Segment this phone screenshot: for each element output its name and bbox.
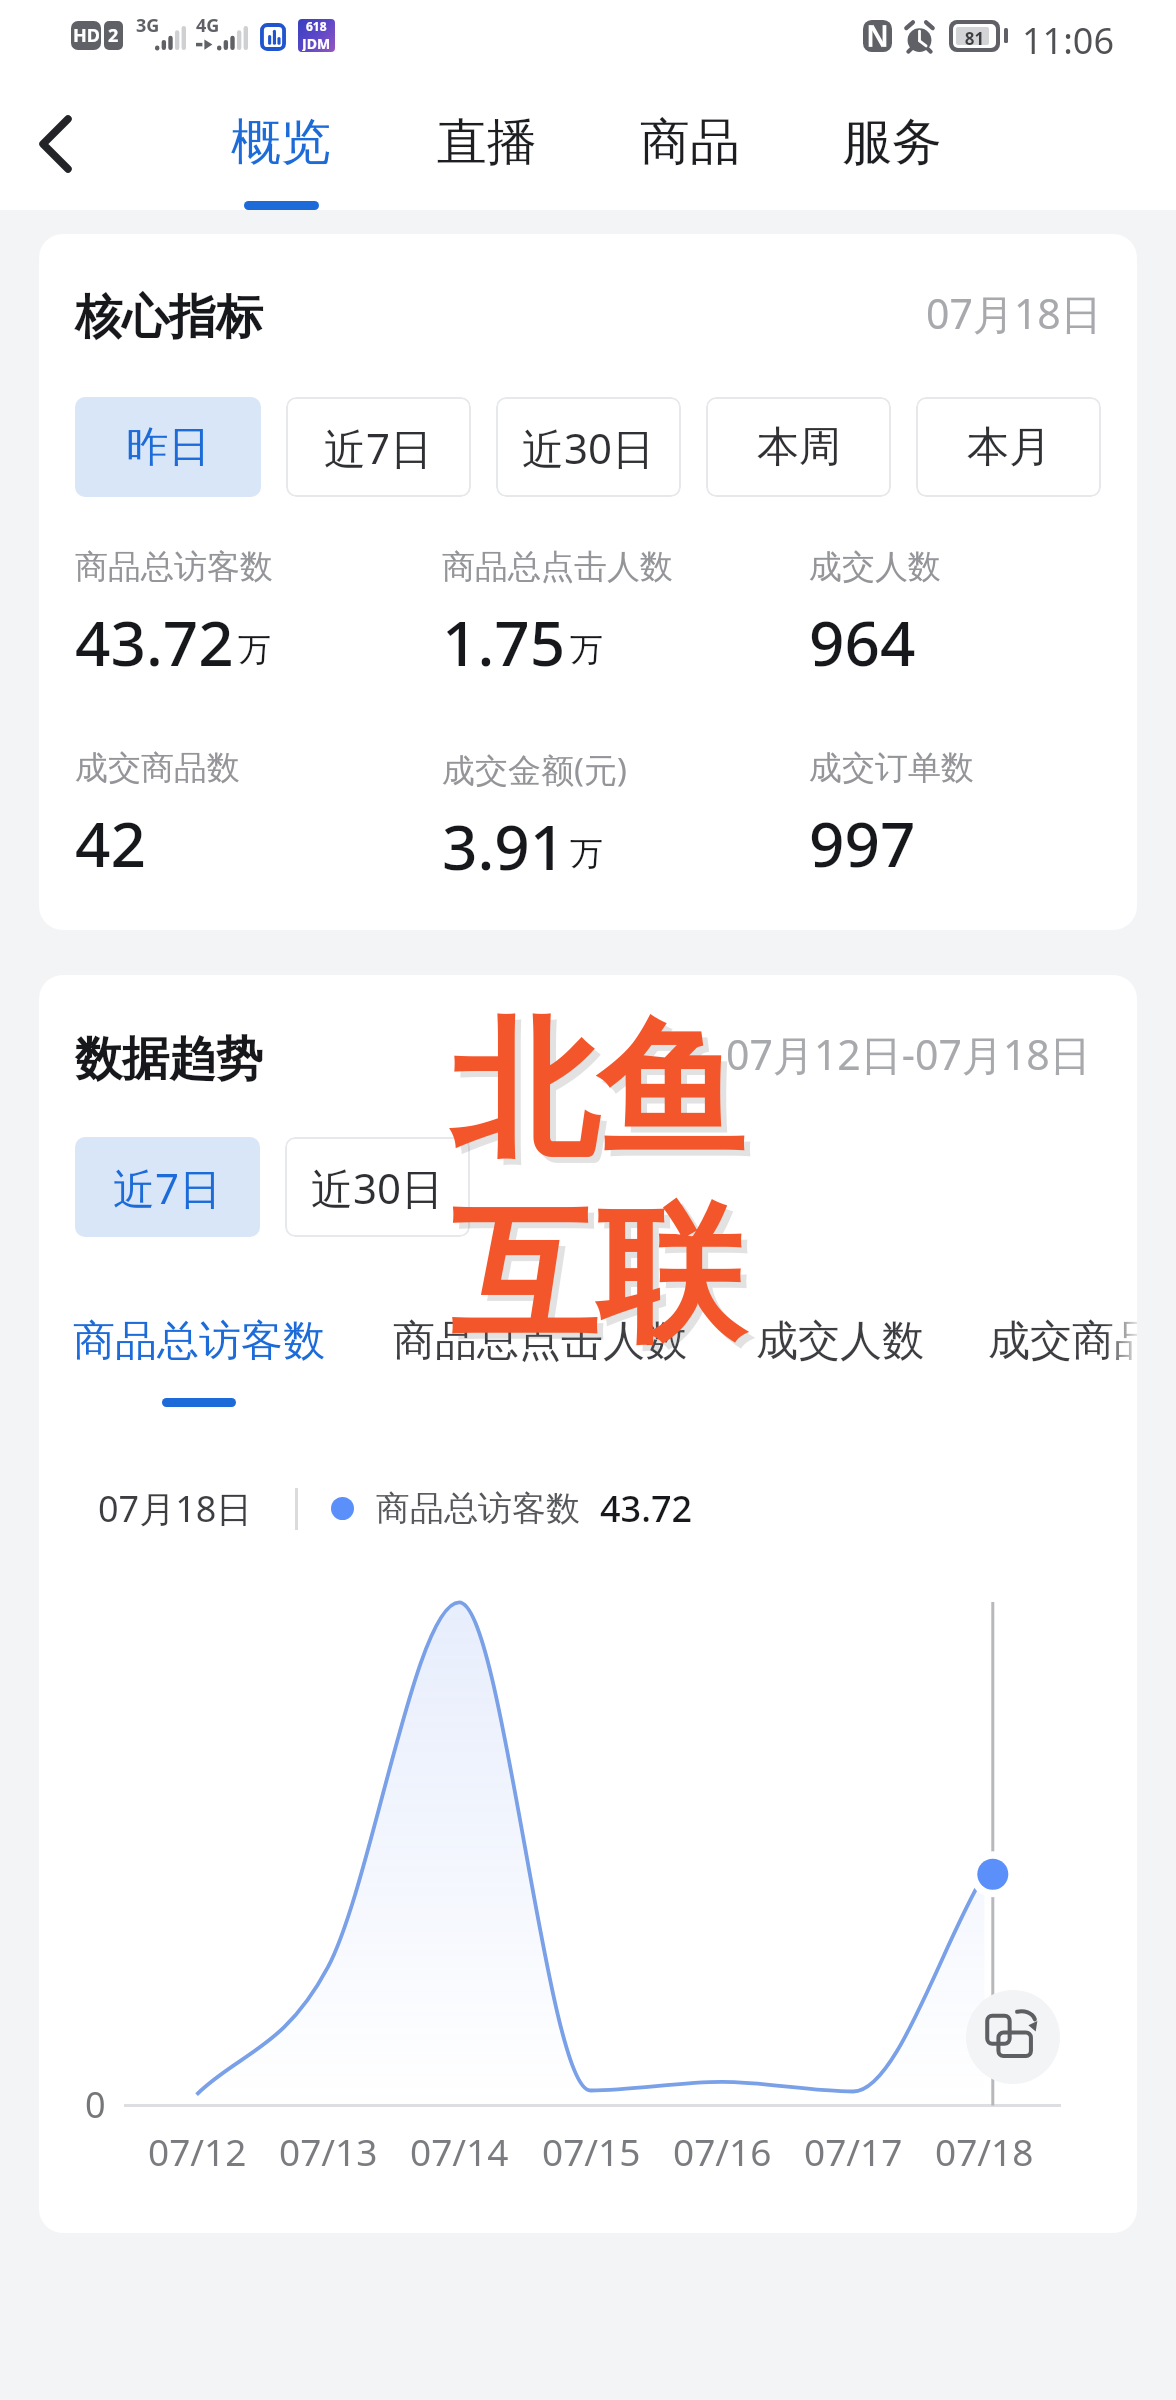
staticText: 成交人数 [756, 1315, 924, 1368]
staticText: 昨日 [126, 421, 210, 474]
button[interactable]: 商品总访客数 [39, 1315, 379, 1415]
staticText: 近7日 [324, 419, 433, 476]
staticText: 数据趋势 [75, 1030, 263, 1089]
staticText: 07/12 [148, 2126, 247, 2176]
staticText: 07/18 [935, 2126, 1034, 2176]
staticText: 07/15 [542, 2126, 641, 2176]
staticText: 07月18日 [926, 285, 1102, 341]
staticText: 997 [809, 801, 916, 885]
staticText: 3G [136, 13, 160, 38]
staticText: 07/17 [804, 2126, 903, 2176]
staticText: 服务 [842, 111, 942, 174]
staticText: 成交金额(元) [442, 747, 627, 792]
staticText: 0 [85, 2080, 106, 2129]
button[interactable]: 本周 [706, 397, 891, 497]
staticText: 万 [570, 833, 603, 875]
button[interactable]: 概览 [181, 78, 381, 210]
staticText: 北鱼 [456, 1005, 750, 1190]
staticText: 商品总点击人数 [393, 1315, 687, 1368]
staticText: 4G [196, 13, 220, 38]
button[interactable]: 商品 [590, 78, 790, 210]
staticText: 成交商品数 [75, 747, 240, 789]
staticText: 964 [809, 600, 916, 684]
button[interactable]: Rotate chart [966, 1990, 1060, 2084]
staticText: 618 [306, 19, 327, 34]
staticText: 42 [75, 801, 146, 885]
staticText: JDM [302, 34, 331, 51]
staticText: 2 [108, 23, 119, 48]
staticText: 直播 [437, 111, 537, 174]
staticText: 43.72 [600, 1484, 693, 1533]
staticText: 近30日 [522, 419, 655, 476]
button[interactable]: 商品总点击人数 [360, 1315, 720, 1415]
staticText: 81 [956, 27, 993, 45]
staticText: 07/13 [279, 2126, 378, 2176]
button[interactable]: Back [0, 78, 110, 210]
staticText: 商品总访客数 [73, 1315, 325, 1368]
staticText: 商品总访客数 [376, 1487, 580, 1530]
staticText: 万 [238, 629, 271, 671]
staticText: 商品总点击人数 [442, 546, 673, 588]
staticText: 近7日 [113, 1159, 222, 1216]
staticText: 43.72 [75, 600, 234, 684]
button[interactable]: 近30日 [285, 1137, 470, 1237]
button[interactable]: 成交人数 [660, 1315, 1020, 1415]
button[interactable]: 直播 [387, 78, 587, 210]
staticText: 北鱼 [450, 999, 744, 1184]
staticText: 近30日 [311, 1159, 444, 1216]
staticText: 互联 [450, 1183, 744, 1368]
staticText: 成交人数 [809, 546, 941, 588]
staticText: 1.75 [442, 600, 566, 684]
staticText: 成交订单数 [809, 747, 974, 789]
button[interactable]: 服务 [792, 78, 992, 210]
staticText: HD [73, 23, 100, 48]
staticText: 07/14 [410, 2126, 509, 2176]
staticText: 本月 [967, 421, 1051, 474]
staticText: 万 [570, 629, 603, 671]
staticText: 概览 [231, 111, 331, 174]
button[interactable]: 近7日 [75, 1137, 260, 1237]
staticText: 成交商品数 [988, 1315, 1137, 1368]
staticText: 07月12日-07月18日 [726, 1026, 1091, 1082]
button[interactable]: 昨日 [75, 397, 261, 497]
staticText: 商品 [640, 111, 740, 174]
staticText: 本周 [757, 421, 841, 474]
staticText: 11:06 [1022, 16, 1115, 65]
staticText: 商品总访客数 [75, 546, 273, 588]
button[interactable]: 成交商品数 [913, 1315, 1137, 1415]
staticText: 07/16 [673, 2126, 772, 2176]
staticText: 互联 [456, 1189, 750, 1374]
button[interactable]: 本月 [916, 397, 1101, 497]
staticText: 核心指标 [75, 288, 263, 347]
staticText: 3.91 [442, 804, 566, 888]
staticText: 07月18日 [98, 1484, 253, 1533]
button[interactable]: 近7日 [286, 397, 471, 497]
button[interactable]: 近30日 [496, 397, 681, 497]
